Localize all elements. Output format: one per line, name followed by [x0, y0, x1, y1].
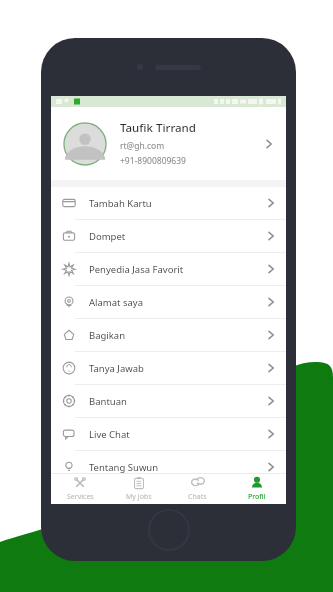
staticText: Tambah Kartu — [89, 197, 266, 210]
staticText: Bantuan — [89, 395, 266, 408]
button[interactable]: Bantuan — [51, 385, 286, 417]
staticText: +91-8900809639 — [120, 155, 186, 167]
button[interactable]: Services — [51, 474, 109, 504]
staticText: Services — [67, 492, 94, 502]
button[interactable]: Live Chat — [51, 418, 286, 450]
button[interactable]: Taufik Tirrand — [51, 107, 286, 180]
staticText: Profil — [248, 492, 266, 502]
staticText: Penyedia Jasa Favorit — [89, 263, 266, 276]
staticText: Live Chat — [89, 428, 266, 441]
staticText: Dompet — [89, 230, 266, 243]
button[interactable]: Alamat saya — [51, 286, 286, 318]
staticText: Bagikan — [89, 329, 266, 342]
button[interactable]: Tambah Kartu — [51, 187, 286, 219]
button[interactable]: Tanya Jawab — [51, 352, 286, 384]
button[interactable]: Tentang Suwun — [51, 451, 286, 483]
button[interactable]: Penyedia Jasa Favorit — [51, 253, 286, 285]
button[interactable]: Bagikan — [51, 319, 286, 351]
staticText: Chats — [188, 492, 207, 502]
staticText: Tanya Jawab — [89, 362, 266, 375]
button[interactable]: My Jobs — [109, 474, 168, 504]
staticText: My Jobs — [126, 492, 152, 502]
staticText: rt@gh.com — [120, 140, 165, 152]
button[interactable]: Profil — [227, 474, 286, 504]
button[interactable]: Chats — [168, 474, 227, 504]
staticText: Alamat saya — [89, 296, 266, 309]
staticText: Tentang Suwun — [89, 461, 266, 474]
staticText: Taufik Tirrand — [120, 120, 196, 136]
button[interactable]: Dompet — [51, 220, 286, 252]
